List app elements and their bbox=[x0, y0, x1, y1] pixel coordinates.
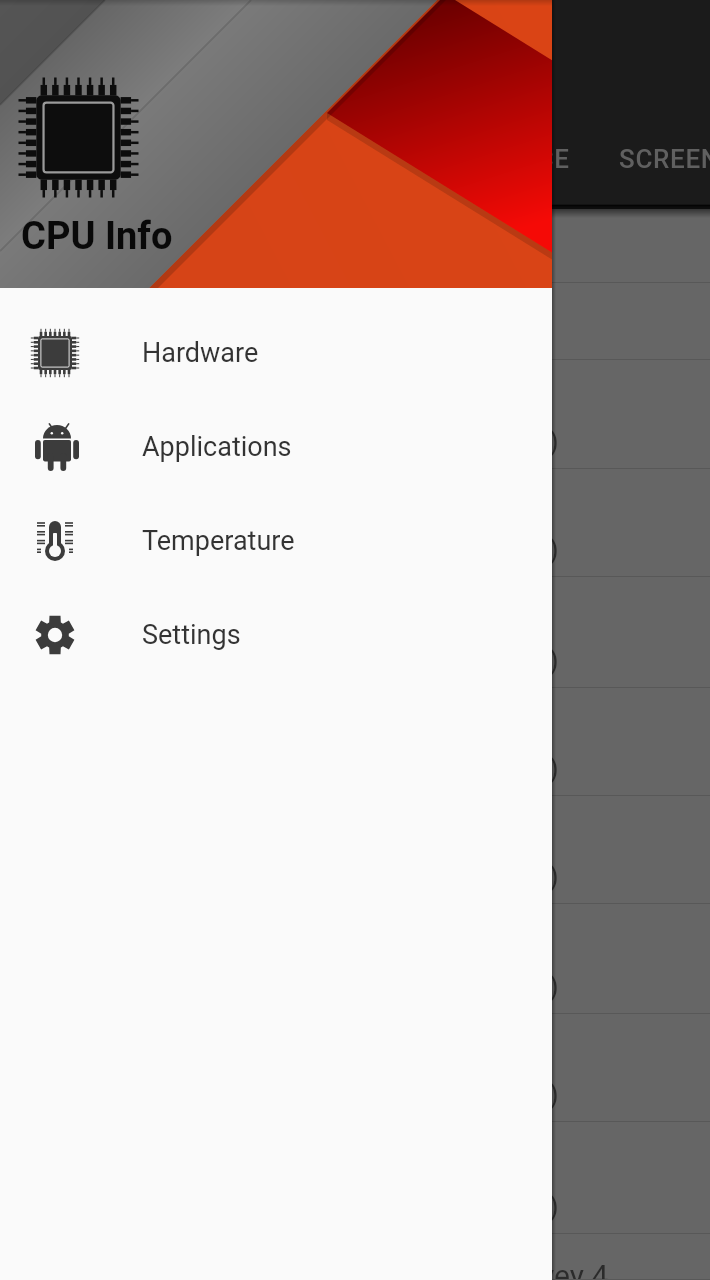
button[interactable]: ) bbox=[0, 904, 710, 1014]
button[interactable]: Temperature bbox=[0, 494, 552, 588]
staticText: CPU Info bbox=[21, 214, 173, 259]
staticText: Survey 4 bbox=[495, 1258, 609, 1280]
staticText: ) bbox=[549, 644, 559, 677]
staticText: DEVICE bbox=[478, 144, 570, 174]
staticText: Hardware bbox=[142, 337, 259, 369]
button[interactable]: ) bbox=[0, 360, 710, 469]
button[interactable]: ) bbox=[0, 688, 710, 796]
button[interactable]: Applications bbox=[0, 400, 552, 494]
button[interactable]: ) bbox=[0, 577, 710, 688]
staticText: Temperature bbox=[142, 525, 295, 557]
button[interactable] bbox=[0, 283, 710, 360]
button[interactable] bbox=[0, 209, 710, 283]
staticText: Applications bbox=[142, 431, 292, 463]
staticText: ) bbox=[549, 533, 559, 566]
button[interactable]: DEVICE bbox=[380, 144, 570, 204]
staticText: ) bbox=[549, 970, 559, 1003]
staticText: ) bbox=[549, 1078, 559, 1111]
staticText: ) bbox=[549, 1190, 559, 1223]
staticText: SCREEN bbox=[619, 144, 710, 174]
button[interactable]: Settings bbox=[0, 588, 552, 682]
staticText: Settings bbox=[142, 619, 241, 651]
other: Hardware bbox=[31, 329, 79, 377]
button[interactable]: ) bbox=[0, 1122, 710, 1234]
button[interactable]: Hardware bbox=[0, 306, 552, 400]
button[interactable]: ) bbox=[0, 469, 710, 577]
button[interactable]: ) bbox=[0, 1014, 710, 1122]
button[interactable]: Survey 4 bbox=[0, 1234, 710, 1280]
button[interactable]: SCREEN bbox=[619, 144, 710, 204]
staticText: ) bbox=[549, 752, 559, 785]
staticText: ) bbox=[549, 860, 559, 893]
button[interactable]: ) bbox=[0, 796, 710, 904]
staticText: ) bbox=[549, 425, 559, 458]
